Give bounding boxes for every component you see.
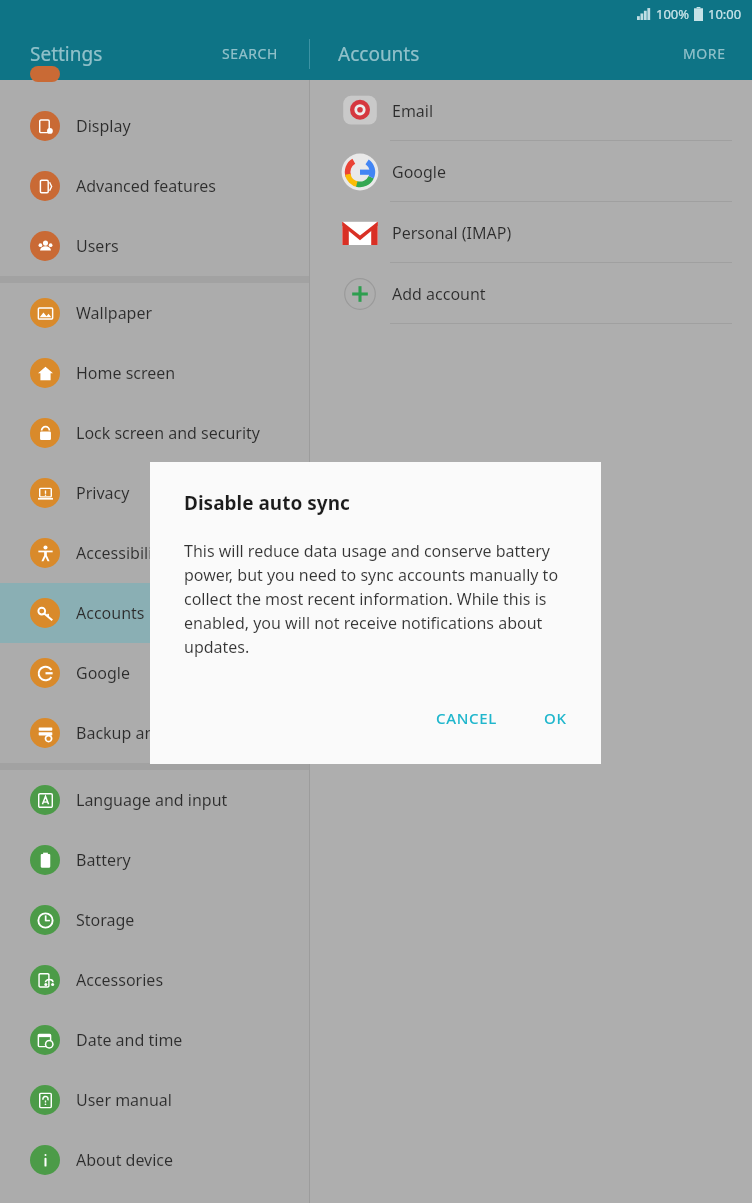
staticText: Backup and reset: [76, 722, 207, 744]
staticText: Users: [76, 235, 119, 257]
button[interactable]: User manual: [0, 1070, 309, 1130]
staticText: Personal (IMAP): [392, 222, 512, 244]
staticText: Lock screen and security: [76, 422, 260, 444]
staticText: 100%: [656, 5, 690, 23]
button[interactable]: Users: [0, 216, 309, 276]
button[interactable]: Google: [0, 643, 309, 703]
staticText: Home screen: [76, 362, 176, 384]
button[interactable]: About device: [0, 1130, 309, 1190]
button[interactable]: Display: [0, 96, 309, 156]
staticText: Storage: [76, 909, 135, 931]
button[interactable]: Advanced features: [0, 156, 309, 216]
button[interactable]: Settings: [20, 35, 113, 73]
button[interactable]: Google: [310, 141, 752, 202]
staticText: Email: [392, 100, 434, 122]
staticText: Google: [76, 662, 131, 684]
button[interactable]: Accounts: [0, 583, 309, 643]
staticText: Date and time: [76, 1029, 183, 1051]
button[interactable]: SEARCH: [212, 36, 288, 71]
button[interactable]: OK: [532, 700, 579, 736]
staticText: CANCEL: [436, 708, 498, 728]
staticText: Battery: [76, 849, 131, 871]
staticText: Advanced features: [76, 175, 216, 197]
staticText: Language and input: [76, 789, 228, 811]
staticText: Add account: [392, 283, 486, 305]
button[interactable]: Home screen: [0, 343, 309, 403]
button[interactable]: MORE: [675, 36, 734, 71]
button[interactable]: Accessibility: [0, 523, 309, 583]
button[interactable]: Backup and reset: [0, 703, 309, 763]
button[interactable]: Personal (IMAP): [310, 202, 752, 263]
staticText: Display: [76, 115, 131, 137]
staticText: Accessories: [76, 969, 164, 991]
staticText: Disable auto sync: [184, 490, 350, 516]
staticText: User manual: [76, 1089, 172, 1111]
button[interactable]: Accessories: [0, 950, 309, 1010]
button[interactable]: Lock screen and security: [0, 403, 309, 463]
button[interactable]: CANCEL: [424, 700, 510, 736]
staticText: This will reduce data usage and conserve…: [184, 540, 573, 657]
staticText: Wallpaper: [76, 302, 153, 324]
button[interactable]: Storage: [0, 890, 309, 950]
staticText: About device: [76, 1149, 174, 1171]
staticText: 10:00: [708, 5, 742, 23]
staticText: Privacy: [76, 482, 130, 504]
staticText: Accounts: [76, 602, 145, 624]
button[interactable]: Privacy: [0, 463, 309, 523]
staticText: Settings: [30, 41, 103, 67]
staticText: OK: [544, 708, 567, 728]
button[interactable]: Date and time: [0, 1010, 309, 1070]
staticText: SEARCH: [222, 44, 278, 63]
button[interactable]: Battery: [0, 830, 309, 890]
staticText: MORE: [683, 44, 726, 63]
staticText: Google: [392, 161, 447, 183]
staticText: Accounts: [338, 41, 420, 67]
button[interactable]: Add account: [310, 263, 752, 324]
button[interactable]: Email: [310, 80, 752, 141]
button[interactable]: Wallpaper: [0, 283, 309, 343]
staticText: Accessibility: [76, 542, 167, 564]
button[interactable]: Language and input: [0, 770, 309, 830]
